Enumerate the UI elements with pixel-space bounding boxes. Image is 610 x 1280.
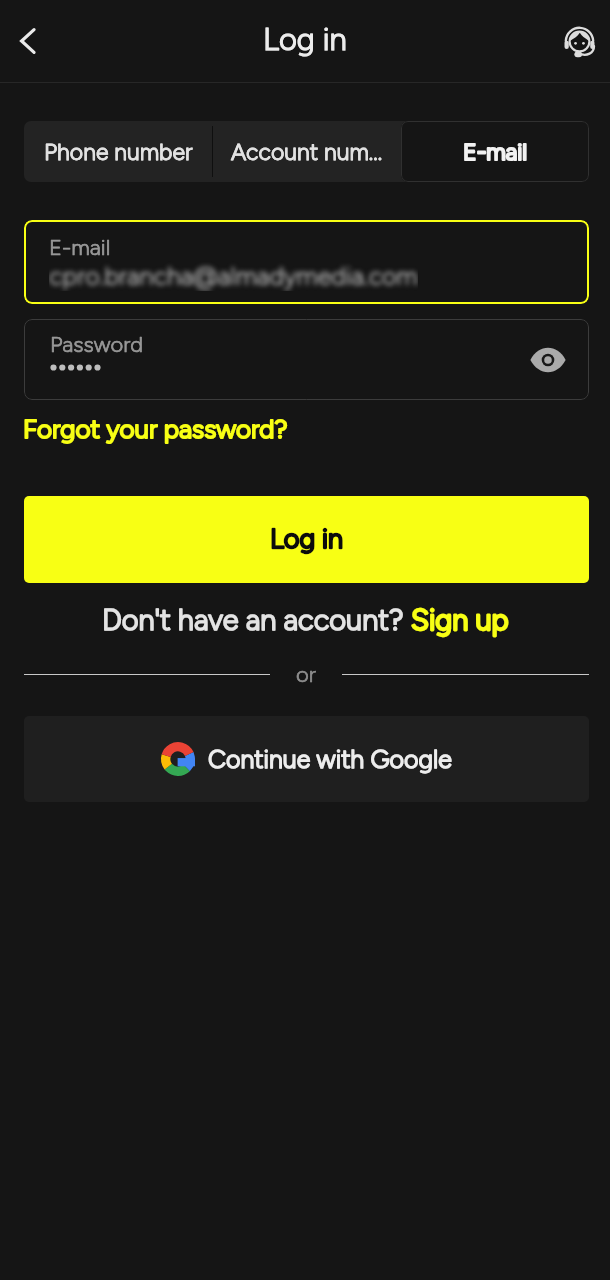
staticText: Phone number <box>44 138 193 166</box>
staticText: Don't have an account? <box>102 602 411 637</box>
staticText: Password <box>50 331 144 357</box>
staticText: Phone number <box>44 138 193 166</box>
button[interactable]: Password <box>24 319 589 400</box>
staticText: Forgot your password? <box>23 413 288 444</box>
button[interactable]: Phone number <box>24 121 212 182</box>
staticText: Continue with Google <box>208 744 452 774</box>
staticText: Log in <box>263 21 347 58</box>
button[interactable]: Sign up <box>411 602 509 637</box>
staticText: Log in <box>270 522 343 554</box>
staticText: or <box>296 661 316 687</box>
button[interactable]: Log in <box>24 496 589 583</box>
staticText: Sign up <box>411 602 509 637</box>
button[interactable]: E-mail <box>401 121 589 182</box>
button[interactable]: Back <box>3 15 55 67</box>
staticText: E-mail <box>463 138 528 166</box>
button[interactable]: Continue with Google <box>24 716 589 802</box>
staticText: Password <box>50 331 144 357</box>
staticText: Account num... <box>231 138 383 166</box>
staticText: Sign up <box>411 602 509 637</box>
button[interactable]: Forgot your password? <box>23 413 288 444</box>
staticText: Don't have an account? <box>102 602 411 637</box>
button[interactable]: Customer support <box>555 17 603 65</box>
staticText: Log in <box>263 21 347 58</box>
staticText: Continue with Google <box>208 744 452 774</box>
staticText: E-mail <box>49 234 111 260</box>
button[interactable]: Show password <box>525 337 571 383</box>
staticText: Log in <box>270 522 343 554</box>
staticText: Forgot your password? <box>23 413 288 444</box>
staticText: E-mail <box>49 234 111 260</box>
button[interactable]: E-mail <box>24 220 589 304</box>
staticText: cpro.brancha@almadymedia.com <box>49 261 418 291</box>
button[interactable]: Account num... <box>213 121 401 182</box>
staticText: Account num... <box>231 138 383 166</box>
staticText: or <box>296 661 316 687</box>
staticText: E-mail <box>463 138 528 166</box>
